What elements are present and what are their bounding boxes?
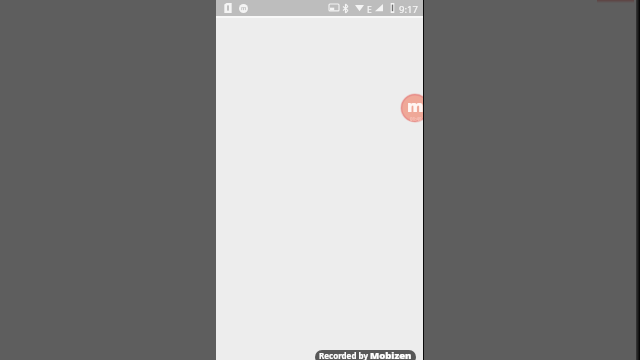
button[interactable]: Mobizen recorder (400, 93, 423, 123)
staticText: E (367, 4, 372, 16)
staticText: 01:49 (410, 116, 422, 122)
staticText: 9:17 (399, 3, 418, 16)
staticText: Recorded by (319, 350, 368, 360)
staticText: m (407, 94, 423, 116)
button[interactable]: Recorded by (315, 350, 416, 360)
staticText: Mobizen (370, 350, 412, 360)
